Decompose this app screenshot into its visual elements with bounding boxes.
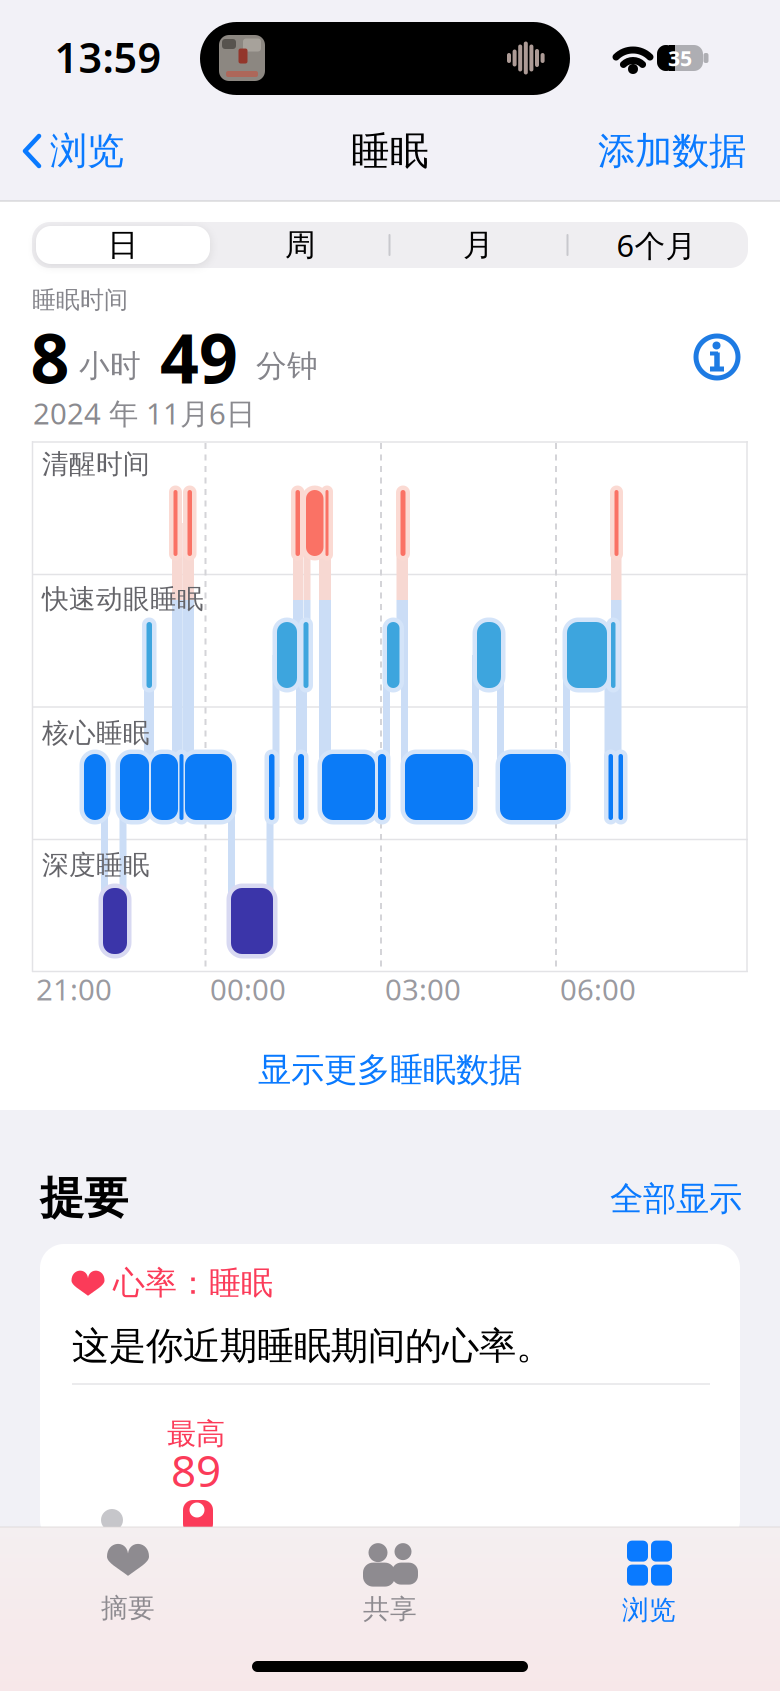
staticText: 深度睡眠 xyxy=(42,849,150,881)
staticText: 21:00 xyxy=(36,969,112,1008)
staticText: 月 xyxy=(463,226,494,264)
button[interactable]: 关于睡眠 xyxy=(693,333,740,380)
staticText: 分钟 xyxy=(256,347,318,385)
staticText: 周 xyxy=(285,226,316,264)
button[interactable]: 共享 xyxy=(300,1528,480,1638)
staticText: 浏览 xyxy=(50,128,124,174)
staticText: 摘要 xyxy=(101,1592,155,1624)
button[interactable]: 月 xyxy=(393,223,563,267)
button[interactable]: 浏览 xyxy=(559,1528,739,1638)
staticText: 89 xyxy=(171,1441,221,1499)
staticText: 核心睡眠 xyxy=(42,717,150,749)
staticText: 06:00 xyxy=(560,969,636,1008)
staticText: 添加数据 xyxy=(598,128,746,174)
staticText: 日 xyxy=(107,226,138,264)
staticText: 8 xyxy=(30,312,69,402)
staticText: 清醒时间 xyxy=(42,448,150,480)
staticText: 35 xyxy=(668,44,692,72)
button[interactable]: 显示更多睡眠数据 xyxy=(190,1042,590,1098)
staticText: 00:00 xyxy=(210,969,286,1008)
staticText: 49 xyxy=(160,312,238,402)
staticText: 心率：睡眠 xyxy=(113,1263,273,1303)
staticText: 这是你近期睡眠期间的心率。 xyxy=(72,1323,553,1369)
button[interactable]: 周 xyxy=(215,223,385,267)
staticText: 最高 xyxy=(167,1416,225,1452)
staticText: 全部显示 xyxy=(610,1178,742,1219)
button[interactable]: 心率：睡眠 xyxy=(40,1244,740,1544)
button[interactable]: 摘要 xyxy=(38,1528,218,1638)
button[interactable]: 添加数据 xyxy=(506,121,746,181)
staticText: 小时 xyxy=(79,347,141,385)
staticText: 睡眠时间 xyxy=(32,285,128,315)
staticText: 浏览 xyxy=(622,1594,676,1626)
button[interactable]: 日 xyxy=(36,226,210,264)
staticText: 03:00 xyxy=(385,969,461,1008)
button[interactable]: 全部显示 xyxy=(542,1175,742,1223)
staticText: 快速动眼睡眠 xyxy=(42,583,204,615)
button[interactable]: 返回浏览 xyxy=(22,121,152,181)
staticText: 提要 xyxy=(40,1171,128,1225)
staticText: 6个月 xyxy=(616,225,696,265)
button[interactable]: 6个月 xyxy=(571,223,741,267)
staticText: 2024 年 11月6日 xyxy=(33,393,255,432)
staticText: 显示更多睡眠数据 xyxy=(258,1049,522,1090)
staticText: 13:59 xyxy=(54,30,161,84)
staticText: 睡眠 xyxy=(351,127,429,175)
staticText: 共享 xyxy=(363,1593,417,1625)
